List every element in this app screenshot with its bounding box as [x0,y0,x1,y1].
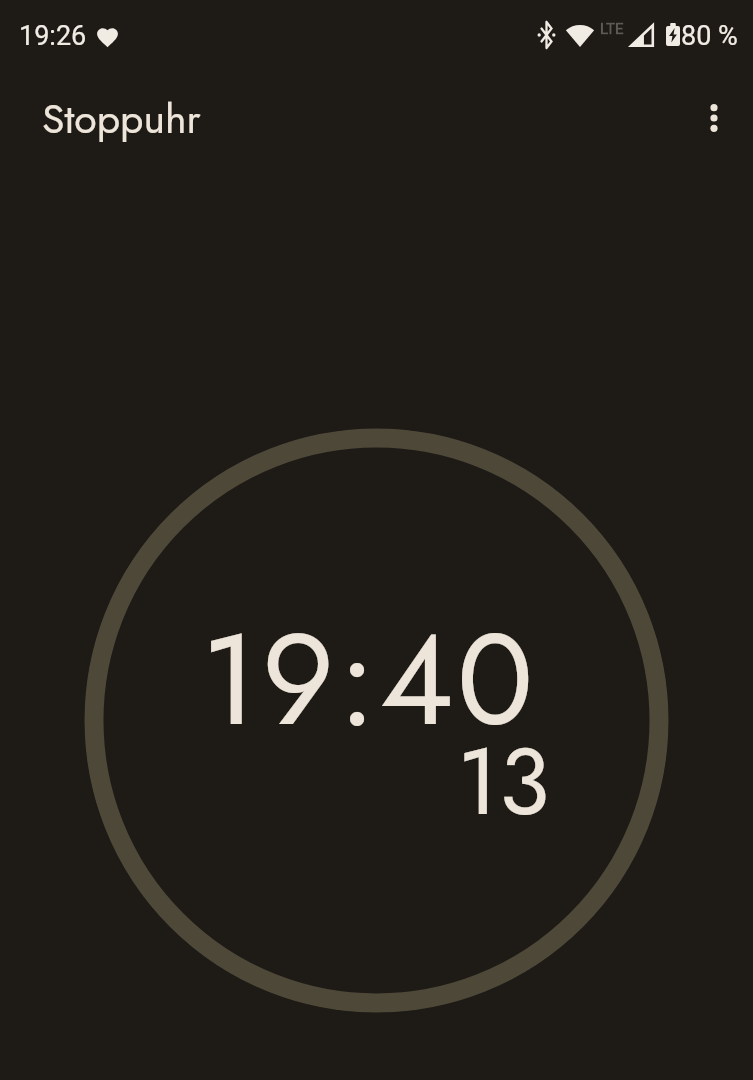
staticText: 80 % [681,20,738,52]
staticText: 19:40 [201,588,537,772]
button[interactable] [84,428,669,1013]
staticText: LTE [600,20,624,38]
button[interactable] [690,94,738,142]
staticText: 13 [457,714,550,848]
staticText: 19:26 [19,20,87,52]
staticText: Stoppuhr [42,89,201,148]
